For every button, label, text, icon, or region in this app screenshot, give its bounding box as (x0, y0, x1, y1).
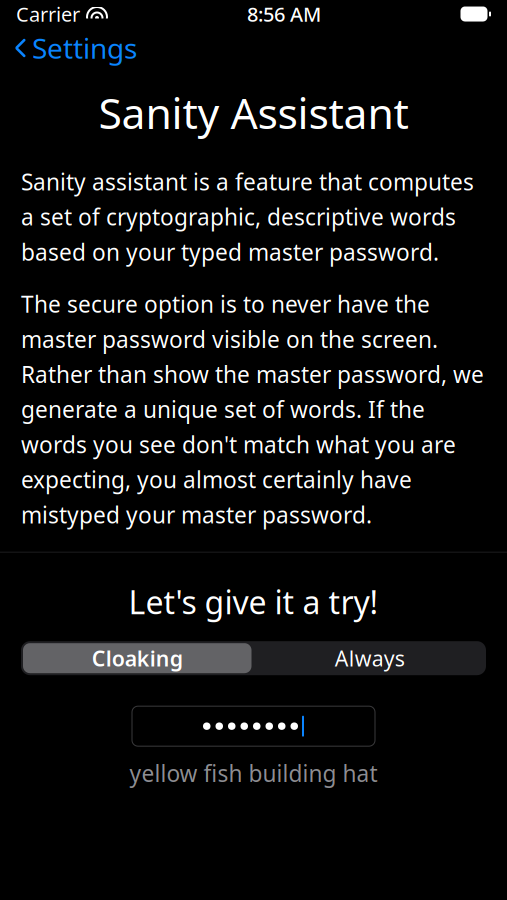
staticText: Carrier (16, 1, 80, 27)
staticText: The secure option is to never have the m… (21, 289, 484, 530)
staticText: Settings (32, 29, 137, 67)
staticText: Cloaking (92, 644, 183, 672)
staticText: Sanity Assistant (98, 84, 408, 141)
staticText: Always (335, 644, 405, 672)
staticText: yellow fish building hat (129, 758, 377, 788)
staticText: Let's give it a try! (128, 581, 378, 623)
button[interactable]: Always (253, 641, 486, 675)
staticText: 8:56 AM (247, 1, 321, 27)
button[interactable]: Cloaking (21, 641, 253, 675)
button[interactable]: Settings (0, 23, 137, 73)
staticText: Sanity assistant is a feature that compu… (21, 167, 474, 267)
